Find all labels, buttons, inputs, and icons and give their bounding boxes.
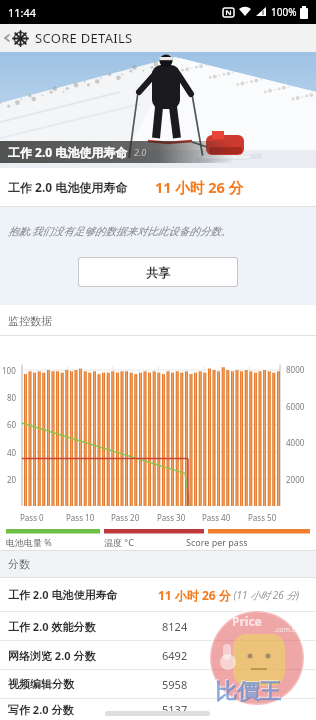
staticText: 11 小时 26 分 [158,587,231,603]
staticText: 工作 2.0 效能分数 [8,619,96,634]
staticText: Score per pass [186,536,248,548]
staticText: SCORE DETAILS [35,29,133,47]
staticText: 60 [7,419,17,430]
staticText: 8000 [286,364,305,375]
staticText: Pass 20 [111,512,140,523]
staticText: 写作 2.0 分数 [8,702,74,717]
staticText: 6000 [286,401,305,412]
staticText: 工作 2.0 电池使用寿命 [8,144,128,160]
staticText: Pass 50 [248,512,277,523]
staticText: 20 [7,474,17,485]
button[interactable]: 共享 [79,258,237,286]
staticText: .com.tw [274,625,300,635]
staticText: 5137 [162,702,188,717]
staticText: (11 小时 26 分) [231,588,300,602]
button[interactable] [2,33,12,43]
staticText: 分数 [8,557,30,571]
button[interactable]: 写作 2.0 分数 [0,699,316,720]
staticText: 视频编辑分数 [8,677,74,691]
staticText: 2.0 [134,146,147,158]
staticText: Pass 10 [66,512,95,523]
button[interactable]: 工作 2.0 效能分数 [0,612,316,640]
staticText: 网络浏览 2.0 分数 [8,648,96,663]
staticText: 比價王 [215,678,281,706]
staticText: 4000 [286,437,305,448]
staticText: 工作 2.0 电池使用寿命 [8,179,128,195]
staticText: 比價王 [214,677,280,705]
staticText: Pass 0 [20,512,44,523]
staticText: 100% [271,5,297,19]
staticText: 11:44 [8,5,37,20]
staticText: 电池电量 % [6,536,52,548]
staticText: 80 [7,392,17,403]
staticText: 5958 [162,677,188,692]
staticText: Price [232,613,262,629]
staticText: 40 [7,447,17,458]
button[interactable]: 工作 2.0 电池使用寿命 [0,578,316,611]
staticText: Pass 40 [202,512,231,523]
button[interactable]: 网络浏览 2.0 分数 [0,641,316,669]
staticText: 100 [2,365,16,376]
staticText: 共享 [146,265,170,280]
staticText: 监控数据 [8,314,52,328]
staticText: 抱歉,我们没有足够的数据来对比此设备的分数。 [8,224,232,238]
staticText: 11 小时 26 分 [155,177,243,197]
button[interactable]: 视频编辑分数 [0,670,316,698]
staticText: Pass 30 [157,512,186,523]
staticText: 工作 2.0 电池使用寿命 [8,587,118,602]
staticText: 6492 [162,648,188,663]
staticText: 2000 [286,474,305,485]
staticText: 8124 [162,619,188,634]
staticText: 温度 °C [104,536,134,548]
